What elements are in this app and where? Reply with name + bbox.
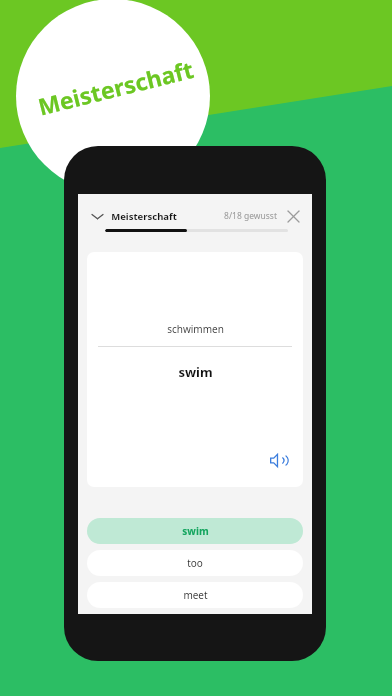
button[interactable]: Close bbox=[285, 208, 301, 224]
button[interactable]: meet bbox=[87, 582, 303, 608]
staticText: swim bbox=[178, 363, 213, 381]
staticText: swim bbox=[182, 524, 209, 538]
staticText: Meisterschaft bbox=[111, 210, 177, 223]
button[interactable]: Play audio bbox=[267, 449, 289, 471]
staticText: meet bbox=[183, 588, 208, 602]
staticText: Meisterschaft bbox=[35, 53, 196, 122]
button[interactable]: schwimmen bbox=[87, 252, 303, 487]
button[interactable]: Collapse bbox=[89, 208, 105, 224]
staticText: schwimmen bbox=[167, 322, 224, 336]
button[interactable]: swim bbox=[87, 518, 303, 544]
button[interactable]: too bbox=[87, 550, 303, 576]
staticText: 8/18 gewusst bbox=[224, 210, 277, 222]
staticText: too bbox=[187, 556, 203, 570]
